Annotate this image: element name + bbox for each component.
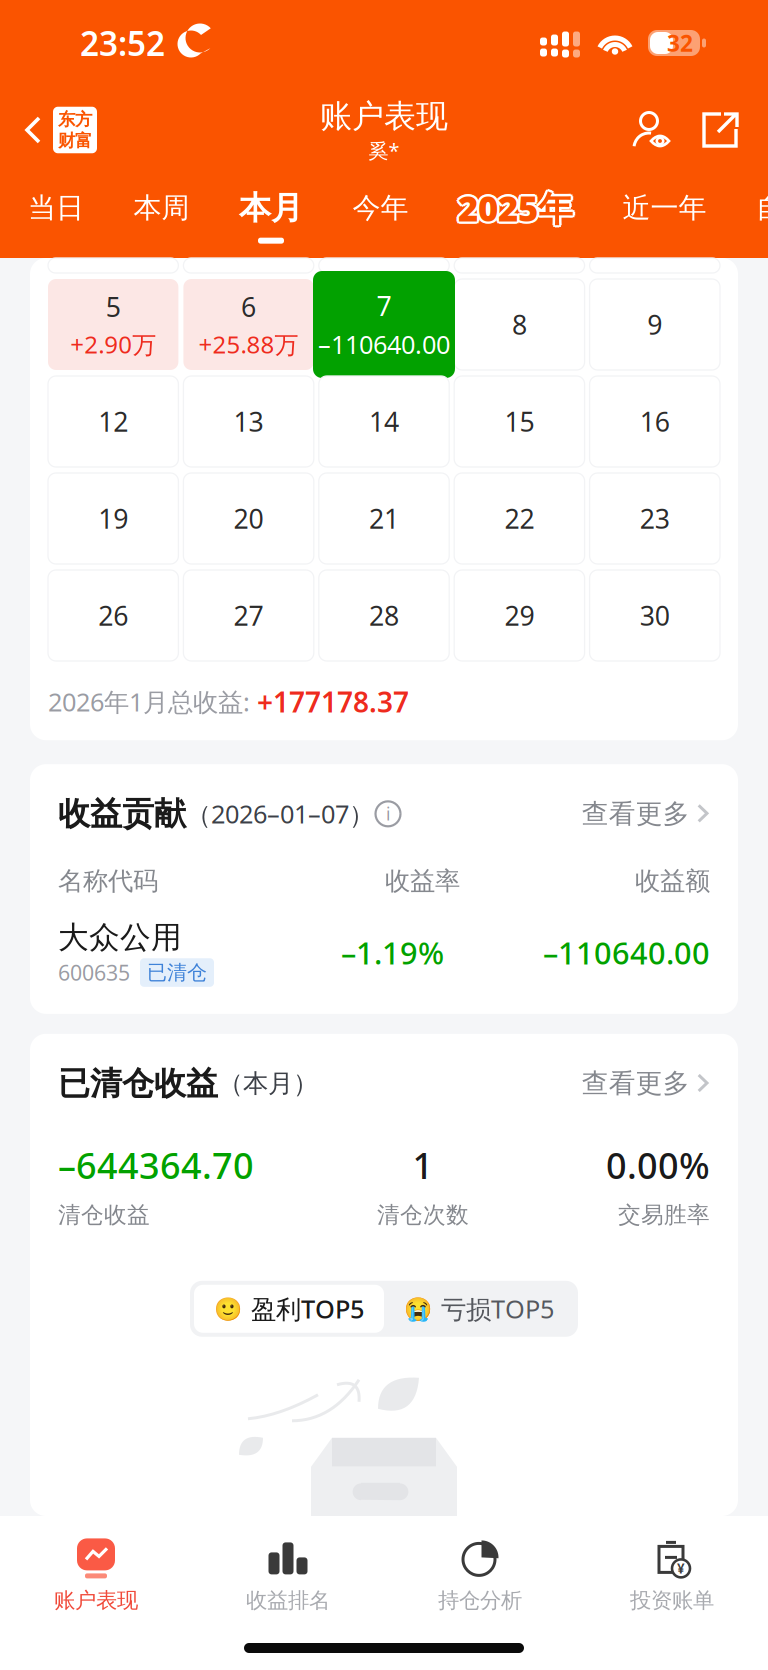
button[interactable]: 27 (183, 570, 314, 661)
staticText: 29 (504, 598, 534, 633)
button[interactable]: 13 (183, 376, 314, 467)
staticText: +25.88万 (199, 328, 299, 360)
button[interactable]: 9 (590, 279, 720, 370)
staticText: 当日 (28, 191, 84, 225)
staticText: 已清仓收益 (58, 1064, 218, 1103)
staticText: 投资账单 (630, 1587, 714, 1614)
staticText: 亏损TOP5 (441, 1292, 554, 1326)
staticText: 2025年 (456, 187, 571, 233)
button[interactable]: 5 (48, 279, 178, 370)
button[interactable]: 16 (590, 376, 720, 467)
staticText: i (386, 802, 390, 825)
staticText: 2025年 (456, 183, 571, 229)
staticText: 收益排名 (246, 1587, 330, 1614)
button[interactable]: 7 (319, 279, 449, 370)
button[interactable]: 14 (319, 376, 449, 467)
staticText: 14 (369, 404, 399, 439)
button[interactable]: 30 (590, 570, 720, 661)
button[interactable]: 本月 (239, 184, 303, 248)
staticText: 30 (640, 598, 670, 633)
staticText: 账户表现 (54, 1587, 138, 1614)
button[interactable]: 22 (454, 473, 585, 564)
staticText: 5 (106, 289, 121, 324)
staticText: –110640.00 (318, 327, 450, 361)
button[interactable]: 8 (454, 279, 585, 370)
staticText: 27 (234, 598, 264, 633)
button[interactable]: 7 (313, 271, 455, 378)
button[interactable]: 收益排名 (192, 1528, 384, 1624)
button[interactable]: Account (632, 109, 674, 151)
button[interactable]: 大众公用 (58, 897, 710, 1014)
staticText: （2026–01–07） (186, 797, 374, 831)
staticText: 查看更多 (582, 797, 690, 830)
staticText: –644364.70 (58, 1141, 254, 1189)
button[interactable]: 持仓分析 (384, 1528, 576, 1624)
staticText: 清仓收益 (58, 1201, 150, 1229)
staticText: 名称代码 (58, 865, 158, 897)
button[interactable]: 查看更多 (582, 1067, 710, 1100)
staticText: 财富 (58, 130, 92, 151)
staticText: 16 (640, 404, 670, 439)
button[interactable]: 15 (454, 376, 585, 467)
button[interactable]: 😭 (384, 1285, 574, 1333)
staticText: 清仓次数 (377, 1201, 469, 1229)
button[interactable]: Back (0, 90, 97, 170)
staticText: 2025年 (460, 183, 575, 229)
staticText: 2025年 (456, 185, 571, 231)
button[interactable]: 6 (183, 279, 314, 370)
staticText: 2025年 (458, 183, 573, 229)
button[interactable]: 🙂 (194, 1285, 384, 1333)
staticText: 交易胜率 (618, 1201, 710, 1229)
button[interactable]: 账户表现 (0, 1528, 192, 1624)
staticText: –110640.00 (543, 932, 710, 973)
button[interactable]: 12 (48, 376, 178, 467)
staticText: 7 (376, 307, 391, 342)
staticText: 自 (756, 191, 768, 225)
staticText: 20 (234, 501, 264, 536)
button[interactable]: 近一年 (622, 184, 706, 248)
staticText: 查看更多 (582, 1067, 690, 1100)
button[interactable]: 本周 (133, 184, 189, 248)
staticText: +2.90万 (70, 328, 156, 360)
button[interactable]: 23 (590, 473, 720, 564)
staticText: 大众公用 (58, 919, 182, 956)
staticText: 收益率 (385, 865, 460, 897)
button[interactable]: 29 (454, 570, 585, 661)
staticText: +177178.37 (257, 683, 409, 720)
button[interactable]: 26 (48, 570, 178, 661)
staticText: 23:52 (80, 21, 165, 65)
staticText: 32 (667, 28, 693, 58)
staticText: 1 (412, 1141, 433, 1189)
staticText: 12 (98, 404, 128, 439)
staticText: 账户表现 (320, 97, 448, 136)
button[interactable]: ¥ (576, 1528, 768, 1624)
staticText: 2025年 (458, 185, 573, 231)
button[interactable]: Share (700, 110, 740, 150)
staticText: 0.00% (606, 1141, 710, 1189)
staticText: 22 (504, 501, 534, 536)
staticText: 今年 (352, 191, 408, 225)
button[interactable]: 2025年 (458, 184, 573, 248)
staticText: 6 (241, 289, 256, 324)
staticText: 本月 (239, 188, 303, 228)
staticText: ¥ (677, 1559, 685, 1577)
button[interactable]: 19 (48, 473, 178, 564)
staticText: 近一年 (622, 191, 706, 225)
staticText: 9 (647, 307, 662, 342)
button[interactable]: 28 (319, 570, 449, 661)
staticText: 收益额 (635, 865, 710, 897)
staticText: 26 (98, 598, 128, 633)
staticText: 23 (640, 501, 670, 536)
staticText: 600635 (58, 958, 130, 987)
staticText: 2025年 (460, 187, 575, 233)
staticText: 21 (369, 501, 399, 536)
staticText: 2026年1月总收益: (48, 685, 257, 718)
staticText: 东方 (58, 109, 92, 130)
button[interactable]: 今年 (352, 184, 408, 248)
button[interactable]: 当日 (28, 184, 84, 248)
button[interactable]: 21 (319, 473, 449, 564)
staticText: 收益贡献 (58, 794, 186, 833)
staticText: 😭 (404, 1296, 432, 1322)
button[interactable]: 查看更多 (582, 797, 710, 830)
button[interactable]: 20 (183, 473, 314, 564)
